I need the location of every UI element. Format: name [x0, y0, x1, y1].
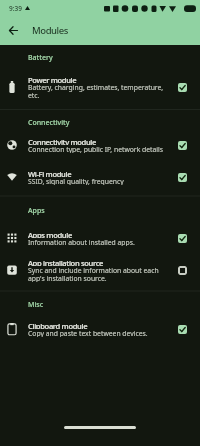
staticText: Apps module [28, 230, 72, 238]
button[interactable] [178, 141, 187, 150]
staticText: Battery [28, 53, 53, 62]
button[interactable] [9, 26, 18, 35]
staticText: Information about installed apps. [28, 238, 135, 246]
button[interactable] [178, 234, 187, 243]
button[interactable] [178, 325, 187, 334]
staticText: Clipboard module [28, 321, 88, 329]
staticText: Copy and paste text between devices. [28, 329, 148, 337]
staticText: Power module [28, 75, 77, 83]
button[interactable]: Apps module [0, 230, 200, 246]
staticText: Modules [32, 24, 68, 37]
button[interactable]: Wi-Fi module [0, 169, 200, 185]
button[interactable] [178, 266, 187, 275]
button[interactable]: App installation source [0, 258, 200, 282]
button[interactable]: Clipboard module [0, 321, 200, 337]
staticText: Misc [28, 300, 44, 309]
button[interactable]: Connectivity module [0, 137, 200, 153]
staticText: App installation source [28, 258, 104, 266]
button[interactable] [178, 83, 187, 92]
staticText: 9:39 [9, 4, 22, 13]
button[interactable] [178, 173, 187, 182]
staticText: Wi-Fi module [28, 169, 72, 177]
button[interactable]: Modules [0, 16, 200, 45]
staticText: Connection type, public IP, network deta… [28, 145, 164, 153]
staticText: Connectivity module [28, 137, 97, 145]
staticText: Connectivity [28, 118, 70, 127]
staticText: Sync and include information about each … [28, 266, 159, 282]
staticText: Apps [28, 206, 45, 215]
staticText: SSID, signal quality, frequency [28, 177, 124, 185]
button[interactable]: Power module [0, 75, 200, 99]
staticText: Battery, charging, estimates, temperatur… [28, 83, 164, 99]
